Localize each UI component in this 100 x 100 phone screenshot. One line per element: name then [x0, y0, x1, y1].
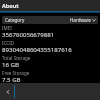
- staticText: Free Storage: [2, 70, 30, 76]
- staticText: 89304048604355187616: [2, 45, 72, 53]
- staticText: Total Storage: [2, 55, 31, 61]
- button[interactable]: Back: [3, 87, 13, 97]
- staticText: 356760056679881: [2, 30, 55, 38]
- button[interactable]: ICCID: [0, 40, 100, 55]
- button[interactable]: Total Storage: [0, 55, 100, 70]
- staticText: About: [2, 2, 19, 9]
- button[interactable]: Free Storage: [0, 70, 100, 83]
- staticText: 7.5 GB: [2, 75, 21, 83]
- button[interactable]: IMEI: [0, 25, 100, 40]
- staticText: 16 GB: [2, 60, 19, 68]
- staticText: Hardware: [70, 17, 91, 23]
- button[interactable]: Hardware: [70, 17, 98, 23]
- button[interactable]: Category: [2, 17, 27, 23]
- staticText: IMEI: [2, 25, 12, 31]
- staticText: ICCID: [2, 40, 15, 46]
- staticText: Category: [5, 17, 25, 23]
